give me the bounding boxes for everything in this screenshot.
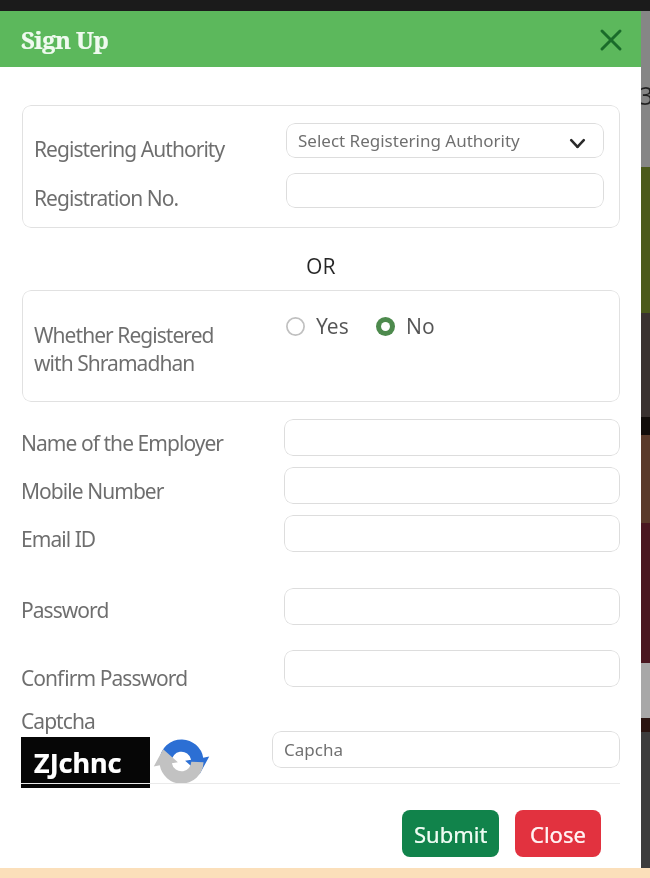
staticText: Mobile Number	[21, 477, 164, 506]
staticText: Registration No.	[34, 184, 179, 213]
staticText: Password	[21, 596, 109, 625]
button[interactable]: Password	[284, 588, 620, 625]
button[interactable]: Close dialog	[591, 20, 631, 60]
staticText: Email ID	[21, 525, 96, 554]
button[interactable]: Refresh captcha	[157, 737, 206, 786]
staticText: Sign Up	[21, 23, 109, 56]
staticText: Whether Registered	[34, 321, 214, 350]
staticText: Name of the Employer	[21, 429, 224, 458]
button[interactable]: No	[376, 310, 446, 342]
staticText: No	[406, 312, 435, 341]
staticText: Select Registering Authority	[298, 129, 520, 152]
button[interactable]: Close	[515, 810, 601, 857]
button[interactable]: Registration No.	[286, 173, 604, 208]
staticText: OR	[306, 252, 336, 276]
staticText: with Shramadhan	[34, 349, 195, 378]
staticText: Confirm Password	[21, 664, 188, 693]
button[interactable]: Confirm Password	[284, 650, 620, 687]
button[interactable]: Capcha	[272, 731, 620, 768]
staticText: Submit	[414, 819, 488, 849]
staticText: ZJchnc	[34, 744, 122, 781]
button[interactable]: Select Registering Authority	[286, 123, 604, 158]
button[interactable]: Email ID	[284, 515, 620, 552]
button[interactable]: Mobile Number	[284, 467, 620, 504]
staticText: Registering Authority	[34, 135, 225, 164]
staticText: Captcha	[21, 707, 95, 736]
staticText: Close	[530, 819, 586, 849]
button[interactable]: Submit	[402, 810, 499, 857]
button[interactable]: Name of the Employer	[284, 419, 620, 456]
staticText: Capcha	[284, 738, 343, 761]
staticText: Yes	[316, 312, 349, 341]
staticText: 3	[639, 78, 650, 112]
button[interactable]: Yes	[286, 310, 366, 342]
